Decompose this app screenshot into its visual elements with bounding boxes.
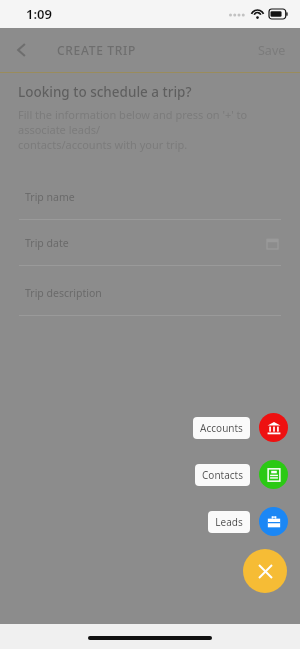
button[interactable]: Trip description [0, 270, 300, 316]
button[interactable]: Leads [208, 507, 288, 536]
staticText: Looking to schedule a trip? [18, 83, 192, 101]
staticText: Contacts [202, 468, 243, 482]
button[interactable]: Trip name [0, 174, 300, 220]
button[interactable]: Accounts [193, 413, 288, 442]
staticText: 1:09 [26, 5, 52, 23]
staticText: Trip date [25, 236, 69, 250]
staticText: CREATE TRIP [57, 42, 137, 58]
button[interactable]: Contacts [195, 460, 288, 489]
button[interactable]: Trip date [0, 220, 300, 266]
staticText: Save [258, 42, 286, 59]
staticText: Accounts [200, 421, 243, 435]
button[interactable]: Back [0, 28, 44, 72]
staticText: Fill the information below and press on … [18, 107, 282, 152]
button[interactable]: Close menu [243, 549, 287, 593]
staticText: Trip name [25, 190, 75, 204]
staticText: Trip description [25, 286, 102, 300]
staticText: Leads [215, 515, 243, 529]
